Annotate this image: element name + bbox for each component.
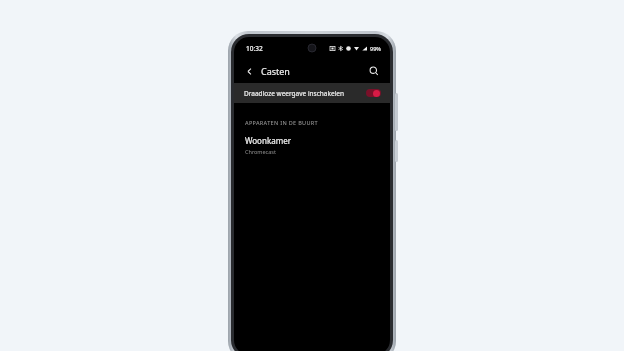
button[interactable]: Woonkamer — [234, 126, 390, 161]
staticText: Chromecast — [245, 148, 276, 155]
staticText: 10:32 — [246, 44, 263, 53]
staticText: APPARATEN IN DE BUURT — [245, 119, 318, 126]
button[interactable]: Draadloze weergave inschakelen — [366, 89, 381, 97]
button[interactable]: Back — [241, 63, 257, 79]
staticText: Casten — [261, 65, 290, 77]
staticText: Draadloze weergave inschakelen — [244, 89, 344, 98]
button[interactable]: Draadloze weergave inschakelen — [234, 83, 390, 103]
staticText: Woonkamer — [245, 135, 291, 146]
staticText: 99% — [370, 45, 381, 52]
button[interactable]: Search — [366, 63, 382, 79]
